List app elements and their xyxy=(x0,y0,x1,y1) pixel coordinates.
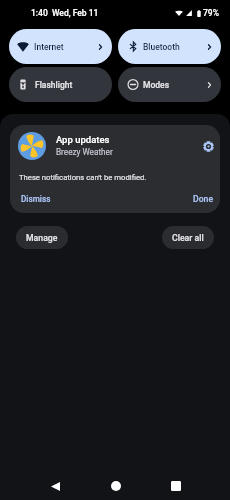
button[interactable]: Bluetooth xyxy=(118,29,221,64)
staticText: Modes xyxy=(143,80,170,90)
staticText: Internet xyxy=(34,42,64,52)
staticText: Bluetooth xyxy=(143,42,180,52)
button[interactable]: Dismiss xyxy=(21,194,51,204)
staticText: Breezy Weather xyxy=(56,147,113,157)
staticText: Wed, Feb 11 xyxy=(52,8,99,18)
staticText: Manage xyxy=(26,233,58,243)
button[interactable]: Recent apps xyxy=(156,472,196,500)
button[interactable]: Home xyxy=(96,472,136,500)
button[interactable]: App updates xyxy=(10,125,220,213)
staticText: These notifications can't be modified. xyxy=(19,173,147,182)
staticText: 1:40 xyxy=(31,8,48,18)
button[interactable]: Done xyxy=(193,194,214,204)
button[interactable]: Manage xyxy=(16,226,68,249)
button[interactable]: Modes xyxy=(118,67,221,102)
staticText: App updates xyxy=(56,134,110,145)
button[interactable]: Back xyxy=(35,472,75,500)
button[interactable]: Internet xyxy=(9,29,112,64)
staticText: Flashlight xyxy=(35,80,73,90)
staticText: 79% xyxy=(203,8,219,18)
button[interactable]: Notification settings xyxy=(197,135,219,157)
staticText: Clear all xyxy=(172,233,204,243)
button[interactable]: Flashlight xyxy=(9,67,112,102)
button[interactable]: Clear all xyxy=(162,226,214,249)
